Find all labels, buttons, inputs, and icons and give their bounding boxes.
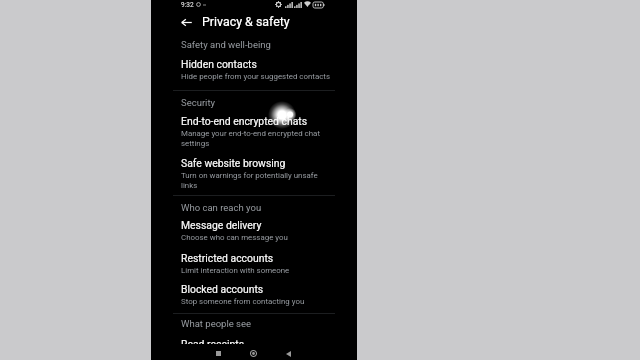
button[interactable]: Blocked accounts [151, 278, 357, 312]
button[interactable]: Navigate up [177, 13, 195, 31]
staticText: Security [181, 97, 216, 108]
staticText: Hide people from your suggested contacts [181, 72, 333, 81]
staticText: Restricted accounts [181, 252, 274, 264]
staticText: Manage your end-to-end encrypted chat se… [181, 129, 333, 148]
staticText: Hidden contacts [181, 58, 257, 70]
staticText: Limit interaction with someone [181, 266, 333, 275]
staticText: Blocked accounts [181, 283, 264, 295]
staticText: Message delivery [181, 219, 262, 231]
staticText: End-to-end encrypted chats [181, 115, 308, 127]
button[interactable]: Safe website browsing [151, 152, 357, 194]
button[interactable]: Hidden contacts [151, 52, 357, 89]
staticText: Choose who can message you [181, 233, 333, 242]
button[interactable]: End-to-end encrypted chats [151, 108, 357, 152]
button[interactable]: Back [283, 348, 294, 359]
button[interactable]: Restricted accounts [151, 246, 357, 278]
staticText: 9:32 [181, 1, 194, 9]
staticText: Who can reach you [181, 202, 262, 213]
staticText: Turn on warnings for potentially unsafe … [181, 171, 333, 190]
staticText: Safe website browsing [181, 157, 286, 169]
button[interactable]: Home [248, 348, 259, 359]
button[interactable]: Message delivery [151, 214, 357, 246]
button[interactable]: Recent apps [213, 348, 224, 359]
staticText: Stop someone from contacting you [181, 297, 333, 306]
staticText: Read receipts [181, 338, 245, 350]
button[interactable]: Read receipts [151, 331, 357, 344]
staticText: Safety and well-being [181, 39, 271, 50]
staticText: What people see [181, 318, 252, 329]
staticText: Privacy & safety [202, 14, 290, 29]
